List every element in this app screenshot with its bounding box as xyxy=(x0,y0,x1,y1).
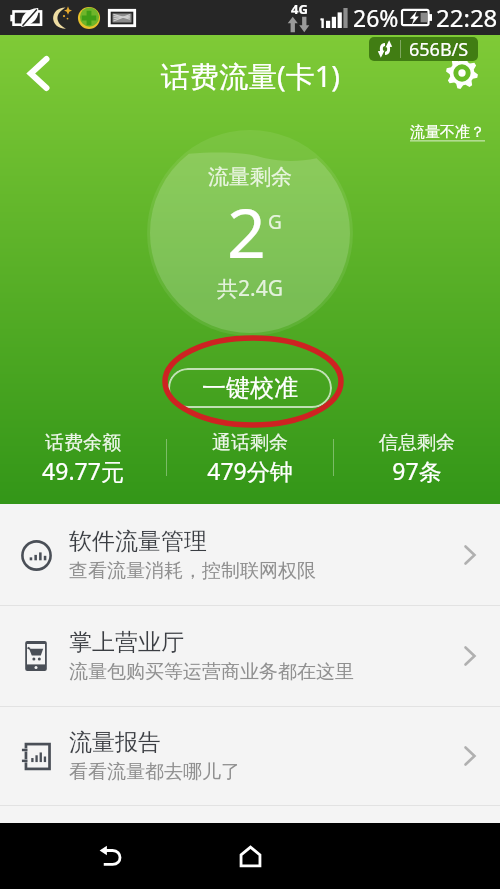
staticText: 话费流量(卡1) xyxy=(161,56,340,96)
button[interactable]: 软件流量管理 xyxy=(0,504,500,605)
button[interactable]: 通话剩余 xyxy=(167,425,333,486)
button[interactable]: 掌上营业厅 xyxy=(0,606,500,706)
staticText: 共2.4G xyxy=(217,274,283,303)
button[interactable]: 信息剩余 xyxy=(334,425,500,486)
staticText: 软件流量管理 xyxy=(69,527,207,556)
staticText: 流量包购买等运营商业务都在这里 xyxy=(69,660,354,684)
staticText: 信息剩余 xyxy=(379,431,455,455)
staticText: 49.77元 xyxy=(42,455,124,486)
button[interactable]: Back xyxy=(18,51,58,95)
button[interactable]: 流量报告 xyxy=(0,707,500,805)
staticText: 2 xyxy=(227,185,266,278)
staticText: 流量报告 xyxy=(69,728,161,757)
staticText: 22:28 xyxy=(436,1,498,34)
staticText: 查看流量消耗，控制联网权限 xyxy=(69,559,316,583)
staticText: G xyxy=(268,209,282,235)
staticText: 通话剩余 xyxy=(212,431,288,455)
button[interactable]: Back xyxy=(80,823,140,889)
button[interactable]: 656B/S xyxy=(369,37,478,61)
staticText: 一键校准 xyxy=(202,373,298,403)
button[interactable]: 一键校准 xyxy=(168,368,332,408)
button[interactable]: 流量不准？ xyxy=(408,121,487,144)
staticText: 656B/S xyxy=(409,37,469,61)
staticText: 看看流量都去哪儿了 xyxy=(69,760,240,784)
staticText: 97条 xyxy=(392,455,442,486)
button[interactable]: Home xyxy=(220,823,280,889)
button[interactable]: Settings xyxy=(441,51,483,95)
staticText: 流量剩余 xyxy=(208,164,292,190)
staticText: 479分钟 xyxy=(207,455,293,486)
staticText: 26% xyxy=(353,2,399,33)
staticText: 4G xyxy=(291,0,308,18)
button[interactable]: 话费余额 xyxy=(0,425,166,486)
staticText: 话费余额 xyxy=(45,431,121,455)
staticText: 掌上营业厅 xyxy=(69,628,184,657)
